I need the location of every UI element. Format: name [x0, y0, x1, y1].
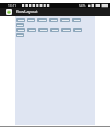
button[interactable]	[73, 28, 82, 32]
button[interactable]: App icon	[0, 8, 110, 16]
button[interactable]	[27, 18, 35, 22]
button[interactable]	[16, 33, 24, 37]
button[interactable]	[16, 18, 25, 22]
button[interactable]	[72, 18, 81, 22]
button[interactable]	[16, 23, 24, 27]
staticText: 54%	[79, 4, 86, 8]
button[interactable]	[37, 18, 47, 22]
staticText: 13:11	[8, 4, 17, 8]
button[interactable]	[60, 18, 70, 22]
button[interactable]	[50, 28, 59, 32]
button[interactable]	[38, 28, 48, 32]
button[interactable]	[16, 28, 25, 32]
button[interactable]	[61, 28, 71, 32]
button[interactable]	[49, 18, 58, 22]
other: App icon	[6, 9, 12, 15]
button[interactable]	[27, 28, 36, 32]
staticText: flowLayout	[16, 9, 38, 15]
